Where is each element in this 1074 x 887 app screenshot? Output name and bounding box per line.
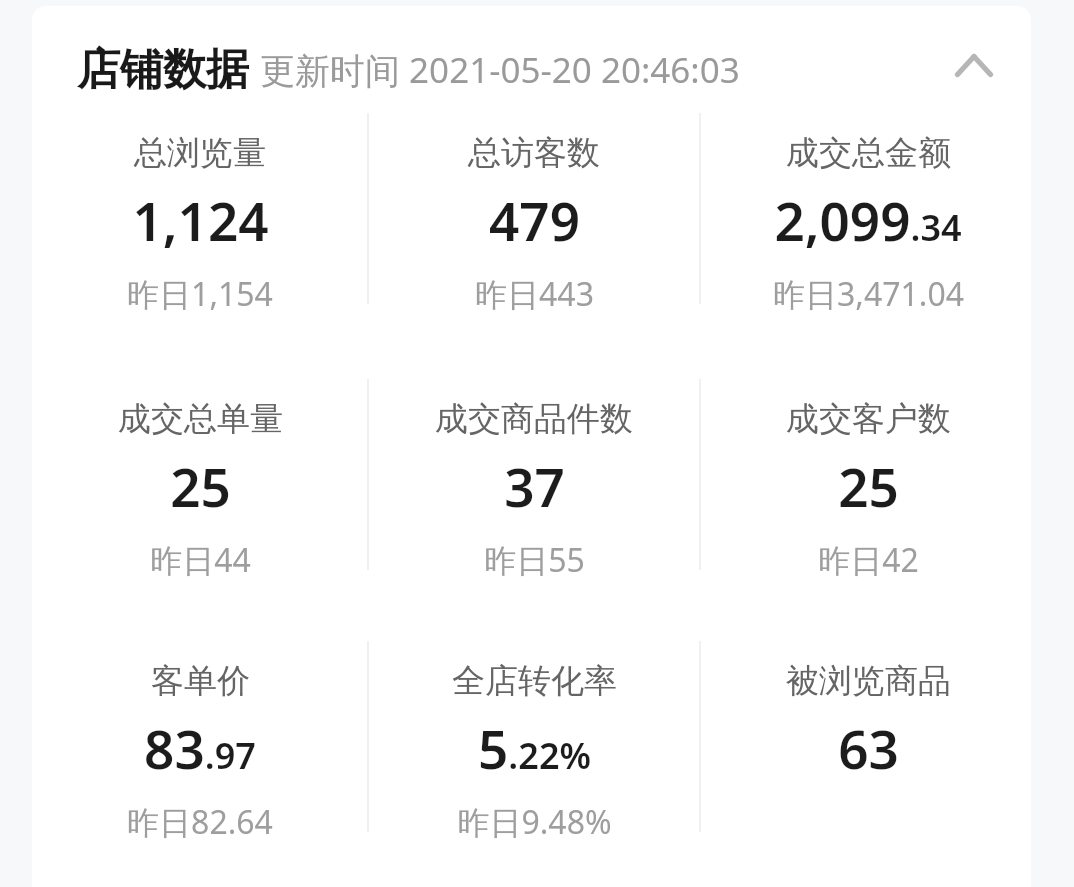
button[interactable]: 总访客数	[367, 95, 701, 320]
staticText: 1,124	[132, 184, 269, 256]
staticText: 成交客户数	[786, 398, 951, 440]
staticText: 2,099.34	[774, 184, 962, 256]
button[interactable]: 被浏览商品	[701, 623, 1035, 848]
staticText: 全店转化率	[452, 660, 617, 702]
staticText: 25	[170, 450, 231, 522]
staticText: 37	[504, 450, 565, 522]
button[interactable]: 客单价	[33, 623, 367, 848]
button[interactable]: Collapse section	[940, 31, 1008, 99]
staticText: 63	[838, 712, 899, 784]
staticText: 25	[838, 450, 899, 522]
staticText: 昨日9.48%	[457, 800, 612, 844]
staticText: 店铺数据	[77, 43, 249, 97]
staticText: 成交总单量	[118, 398, 283, 440]
staticText: 昨日44	[150, 538, 251, 582]
staticText: 昨日82.64	[127, 800, 273, 844]
staticText: 总访客数	[468, 132, 600, 174]
staticText: 成交商品件数	[435, 398, 633, 440]
button[interactable]: 总浏览量	[33, 95, 367, 320]
staticText: 昨日55	[484, 538, 585, 582]
button[interactable]: 店铺数据	[77, 40, 740, 100]
button[interactable]: 全店转化率	[367, 623, 701, 848]
staticText: 被浏览商品	[786, 660, 951, 702]
button[interactable]: 成交客户数	[701, 361, 1035, 586]
staticText: 昨日3,471.04	[773, 272, 964, 316]
button[interactable]: 成交总单量	[33, 361, 367, 586]
staticText: 成交总金额	[786, 132, 951, 174]
staticText: 昨日443	[475, 272, 594, 316]
staticText: 83.97	[144, 712, 256, 784]
staticText: 昨日42	[818, 538, 919, 582]
staticText: 总浏览量	[134, 132, 266, 174]
staticText: 5.22%	[478, 712, 591, 784]
button[interactable]: 成交商品件数	[367, 361, 701, 586]
staticText: 昨日1,154	[127, 272, 273, 316]
button[interactable]: 成交总金额	[701, 95, 1035, 320]
staticText: 更新时间 2021-05-20 20:46:03	[260, 46, 740, 94]
staticText: 479	[489, 184, 580, 256]
staticText: 客单价	[151, 660, 250, 702]
